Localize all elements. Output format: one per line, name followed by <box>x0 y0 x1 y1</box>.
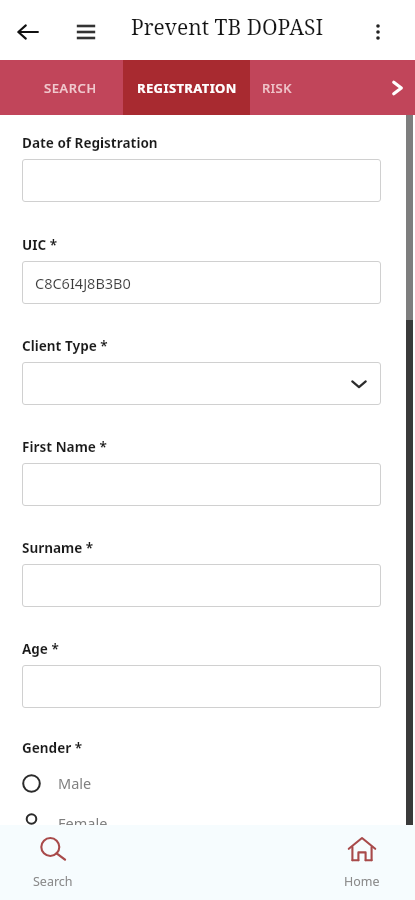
staticText: First Name * <box>22 438 107 456</box>
button[interactable]: Back <box>10 14 46 50</box>
button[interactable]: Menu <box>68 14 104 50</box>
staticText: Home <box>344 873 380 890</box>
button[interactable]: Select client type <box>22 362 381 405</box>
staticText: Age * <box>22 640 59 658</box>
button[interactable]: Search <box>8 825 98 900</box>
button[interactable]: RISK ASSESSMENT <box>250 60 378 115</box>
button[interactable]: More tabs <box>379 60 415 115</box>
button[interactable]: Female <box>22 813 381 825</box>
button[interactable] <box>22 665 381 708</box>
staticText: Date of Registration <box>22 134 158 152</box>
staticText: Search <box>33 873 73 890</box>
staticText: SEARCH <box>44 79 97 97</box>
button[interactable]: REGISTRATION <box>123 60 250 115</box>
button[interactable]: Male <box>22 767 381 799</box>
button[interactable] <box>22 159 381 202</box>
staticText: Client Type * <box>22 337 108 355</box>
staticText: Male <box>58 773 92 793</box>
button[interactable]: C8C6I4J8B3B0 <box>22 261 381 304</box>
button[interactable] <box>22 564 381 607</box>
button[interactable]: SEARCH <box>18 60 123 115</box>
button[interactable]: Home <box>317 825 407 900</box>
button[interactable] <box>22 463 381 506</box>
staticText: UIC * <box>22 236 57 254</box>
staticText: REGISTRATION <box>137 79 237 97</box>
staticText: C8C6I4J8B3B0 <box>35 273 131 293</box>
button[interactable]: More options <box>358 12 398 52</box>
staticText: Surname * <box>22 539 94 557</box>
staticText: Gender * <box>22 739 83 757</box>
staticText: Female <box>58 813 108 825</box>
staticText: Prevent TB DOPASI <box>131 13 324 42</box>
staticText: RISK ASSESSMENT <box>262 79 378 97</box>
